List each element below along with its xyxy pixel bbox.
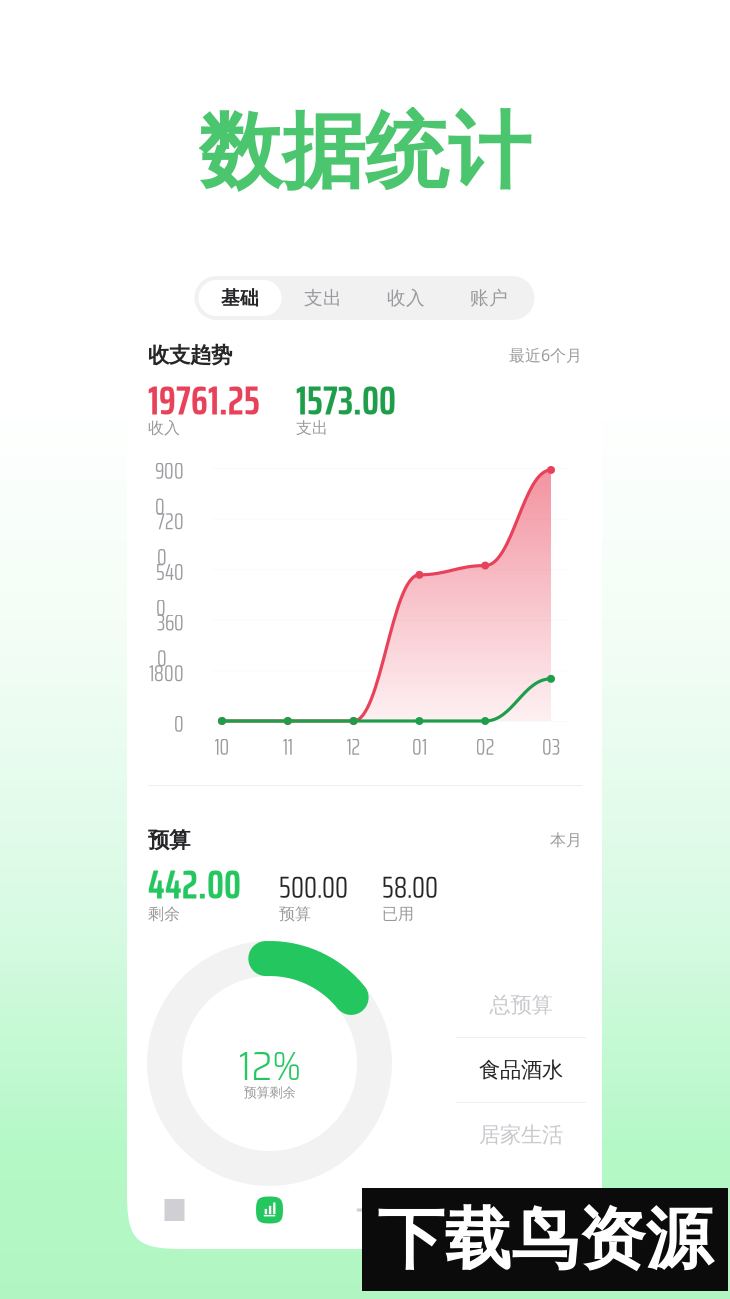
staticText: 收支趋势: [148, 342, 232, 368]
staticText: 剩余: [148, 904, 180, 924]
staticText: 账户: [470, 286, 508, 309]
staticText: 收入: [148, 418, 180, 438]
staticText: 12%: [238, 1034, 300, 1097]
staticText: 3600: [157, 605, 184, 676]
staticText: 19761.25: [148, 369, 260, 432]
button[interactable]: 支出: [281, 280, 364, 316]
button[interactable]: Statistics: [222, 1171, 317, 1249]
staticText: 10: [214, 729, 229, 765]
button[interactable]: 基础: [198, 280, 281, 316]
staticText: 1573.00: [296, 369, 396, 432]
staticText: 7200: [157, 504, 184, 575]
button[interactable]: Add: [317, 1171, 412, 1249]
staticText: 数据统计: [199, 101, 531, 203]
staticText: 12: [347, 729, 361, 765]
staticText: 500.00: [279, 863, 348, 911]
staticText: 0: [174, 706, 184, 742]
staticText: 居家生活: [479, 1122, 563, 1148]
staticText: 收入: [387, 286, 425, 309]
button[interactable]: Records: [127, 1171, 222, 1249]
staticText: 已用: [382, 904, 414, 924]
staticText: 支出: [296, 418, 328, 438]
button[interactable]: 总预算: [441, 973, 601, 1037]
staticText: 预算: [279, 904, 311, 924]
staticText: 基础: [221, 286, 259, 309]
staticText: 食品酒水: [479, 1057, 563, 1083]
staticText: 01: [412, 729, 427, 765]
staticText: 442.00: [148, 853, 241, 916]
staticText: 02: [476, 729, 495, 765]
button[interactable]: 收入: [364, 280, 447, 316]
button[interactable]: 账户: [447, 280, 530, 316]
staticText: 03: [542, 729, 560, 765]
staticText: 总预算: [489, 992, 552, 1018]
staticText: 下载鸟资源: [377, 1199, 712, 1280]
button[interactable]: Profile: [507, 1171, 602, 1249]
staticText: 预算剩余: [243, 1084, 295, 1101]
staticText: 本月: [550, 830, 582, 850]
staticText: 58.00: [382, 863, 438, 911]
button[interactable]: Assets: [412, 1171, 507, 1249]
staticText: 1800: [149, 655, 184, 691]
button[interactable]: 居家生活: [441, 1103, 601, 1167]
staticText: 支出: [304, 286, 342, 309]
staticText: 9000: [155, 453, 184, 524]
button[interactable]: 食品酒水: [441, 1038, 601, 1102]
staticText: 11: [283, 729, 293, 765]
staticText: 5400: [156, 554, 184, 626]
staticText: 预算: [148, 827, 190, 853]
staticText: 最近6个月: [509, 344, 582, 366]
